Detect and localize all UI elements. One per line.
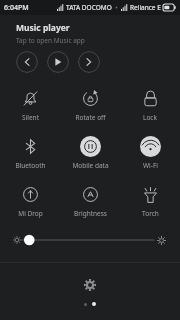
button[interactable]: Wi-Fi	[120, 129, 180, 177]
staticText: TATA DOCOMO	[66, 3, 112, 12]
button[interactable]: Bluetooth	[0, 129, 60, 177]
button[interactable]: Music player	[0, 15, 180, 75]
staticText: Bluetooth	[15, 161, 46, 170]
staticText: Music player	[16, 22, 70, 34]
button[interactable]: Settings	[80, 275, 100, 295]
staticText: Mobile data	[72, 161, 109, 170]
button[interactable]: Rotate off	[60, 81, 120, 129]
button[interactable]: Brightness slider	[22, 233, 154, 247]
button[interactable]: Brightness	[60, 177, 120, 225]
button[interactable]: Torch	[120, 177, 180, 225]
staticText: Brightness	[74, 209, 107, 218]
staticText: Reliance E	[130, 3, 161, 12]
staticText: Silent	[22, 113, 39, 122]
button[interactable]: Mobile data	[60, 129, 120, 177]
staticText: 6:04PM	[4, 3, 29, 13]
button[interactable]: Lock	[120, 81, 180, 129]
button[interactable]: Previous	[16, 51, 38, 73]
staticText: Wi-Fi	[143, 161, 158, 170]
button[interactable]: Mi Drop	[0, 177, 60, 225]
staticText: Lock	[143, 113, 157, 122]
button[interactable]: Next	[78, 51, 100, 73]
staticText: Rotate off	[75, 113, 106, 122]
staticText: Tap to open Music app	[16, 36, 85, 45]
staticText: Torch	[142, 209, 159, 218]
button[interactable]: Silent	[0, 81, 60, 129]
button[interactable]: Play	[47, 51, 69, 73]
staticText: Mi Drop	[18, 209, 43, 218]
